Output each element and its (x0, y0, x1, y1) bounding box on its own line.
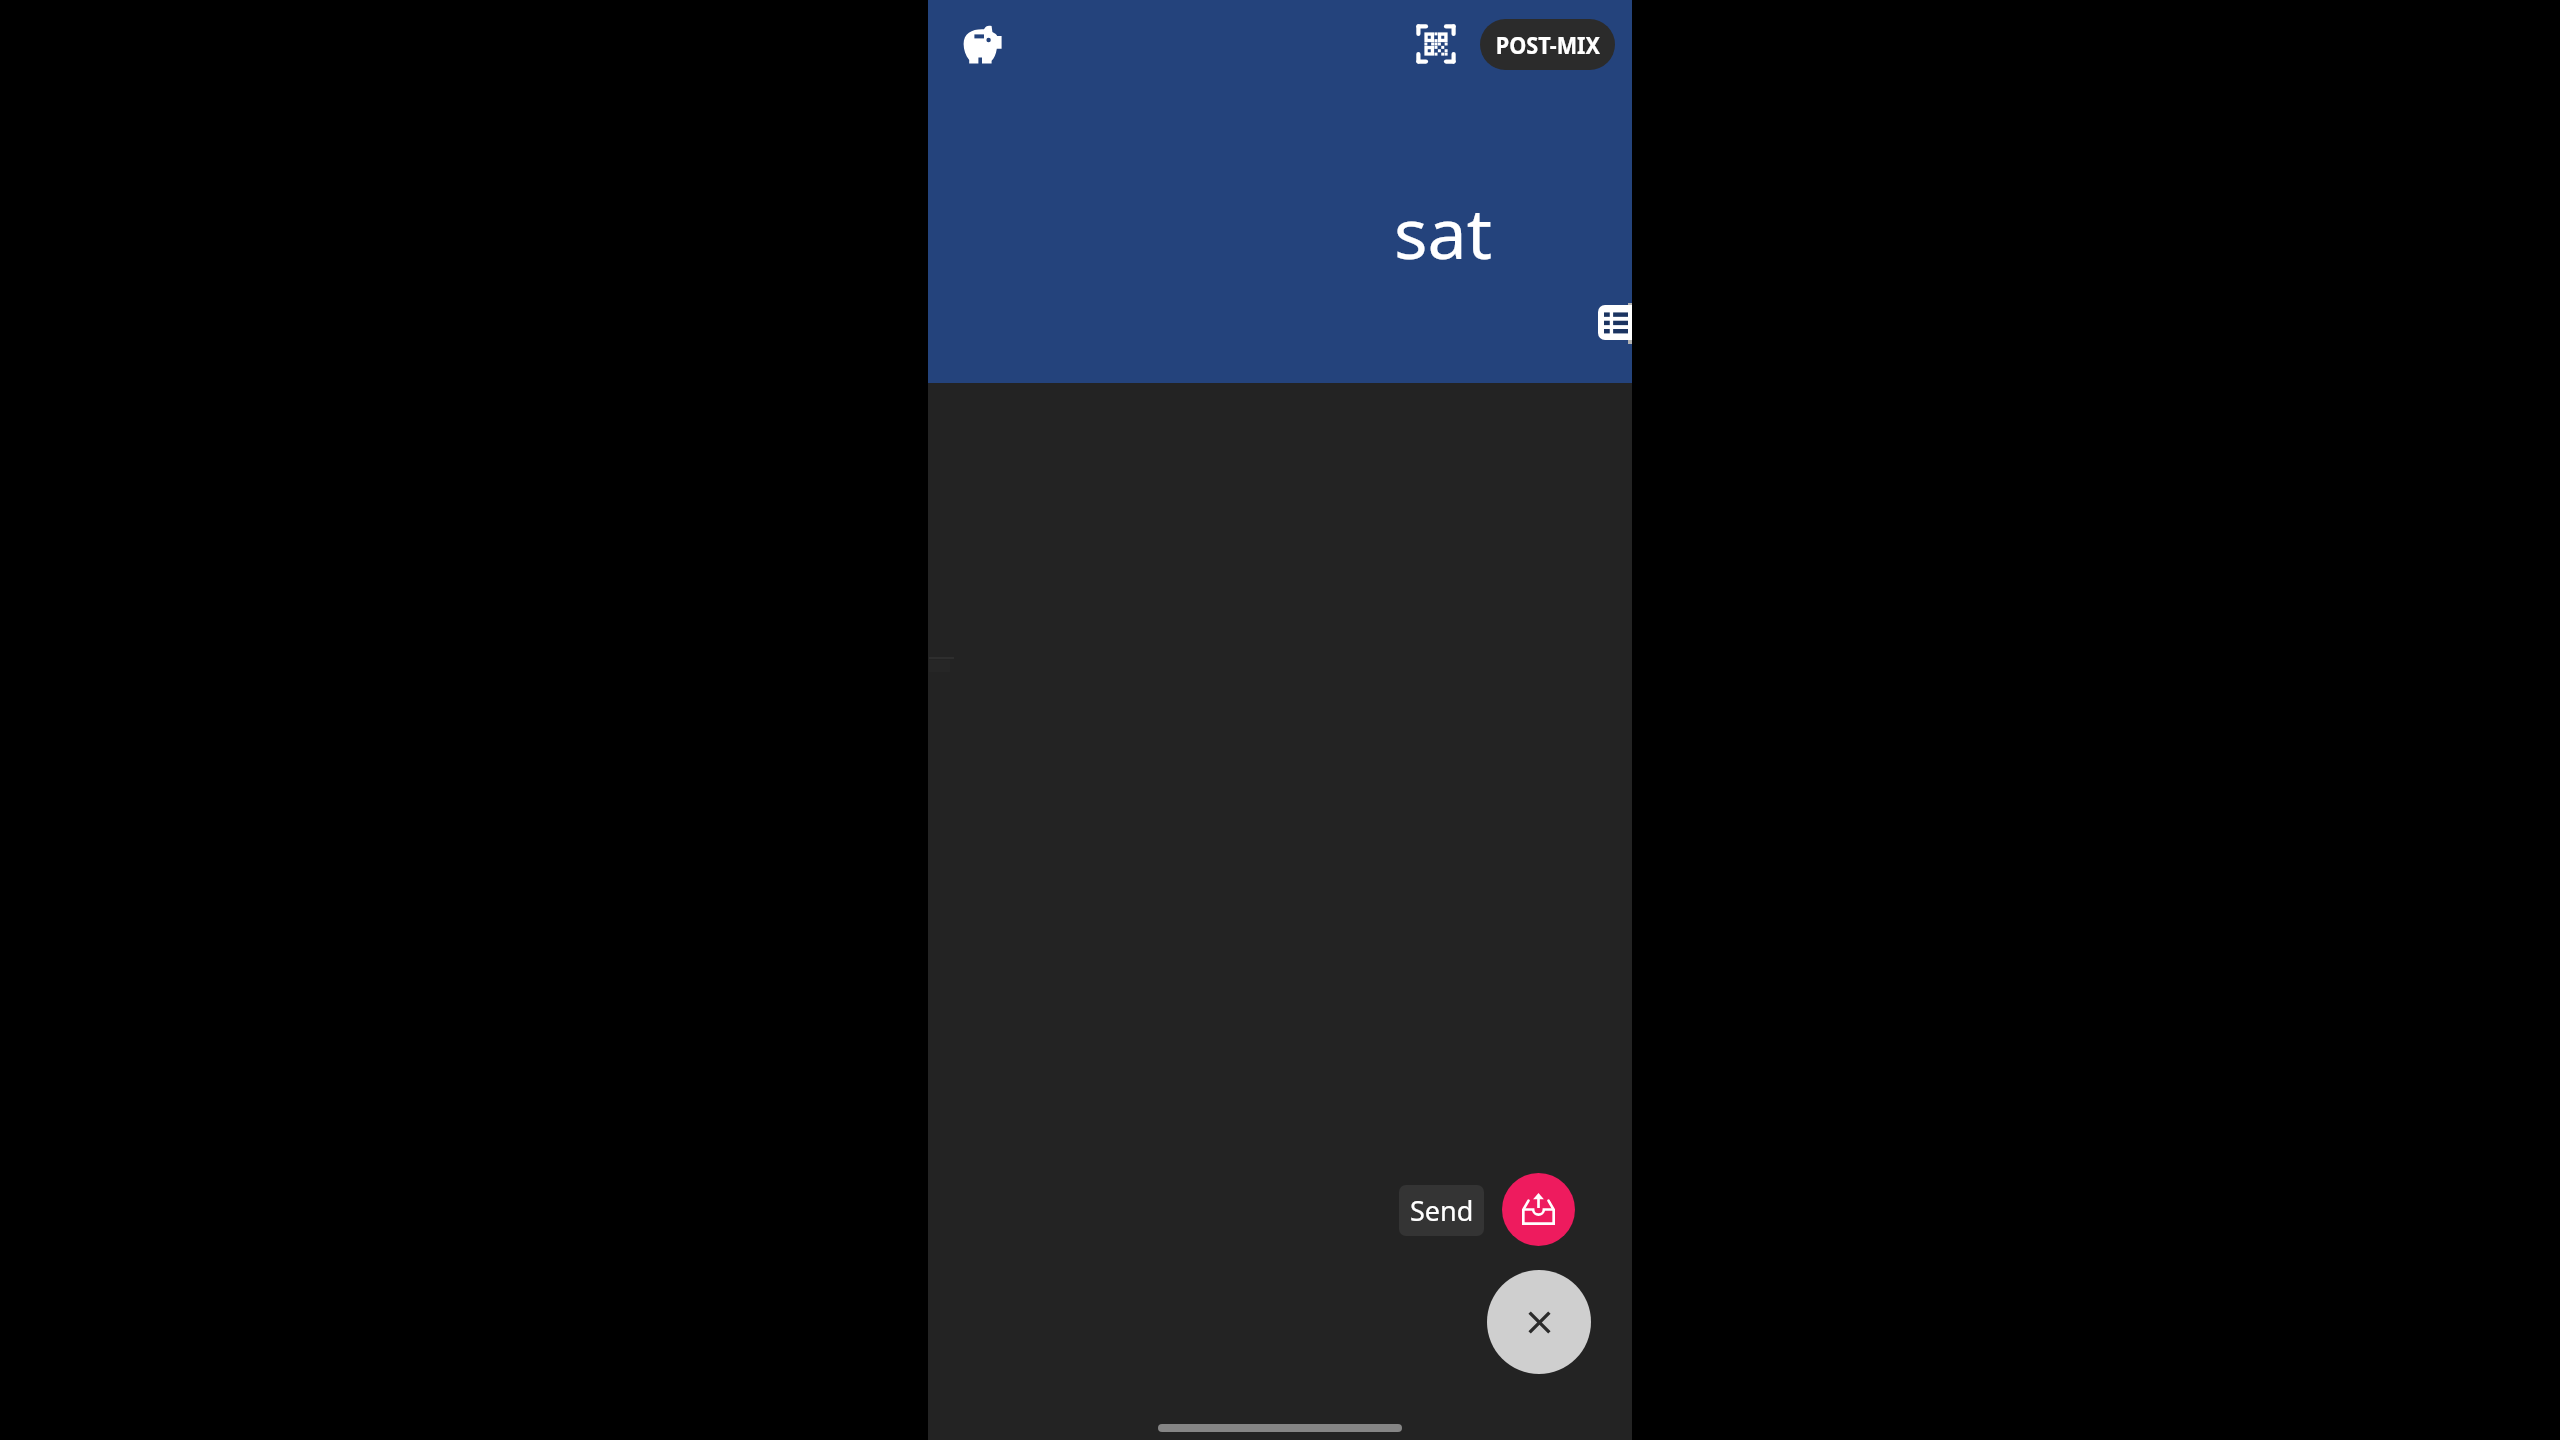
staticText: POST-MIX (1496, 28, 1600, 61)
button[interactable]: Send (1399, 1185, 1484, 1236)
button[interactable]: Savings (962, 24, 1002, 64)
staticText: Send (1410, 1192, 1474, 1229)
button[interactable]: POST-MIX (1480, 19, 1615, 70)
staticText: sat (1394, 184, 1493, 279)
button[interactable]: Close (1487, 1270, 1591, 1374)
button[interactable]: List view (1598, 305, 1632, 340)
button[interactable]: Send (1502, 1173, 1575, 1246)
button[interactable]: Scan QR code (1416, 24, 1456, 64)
